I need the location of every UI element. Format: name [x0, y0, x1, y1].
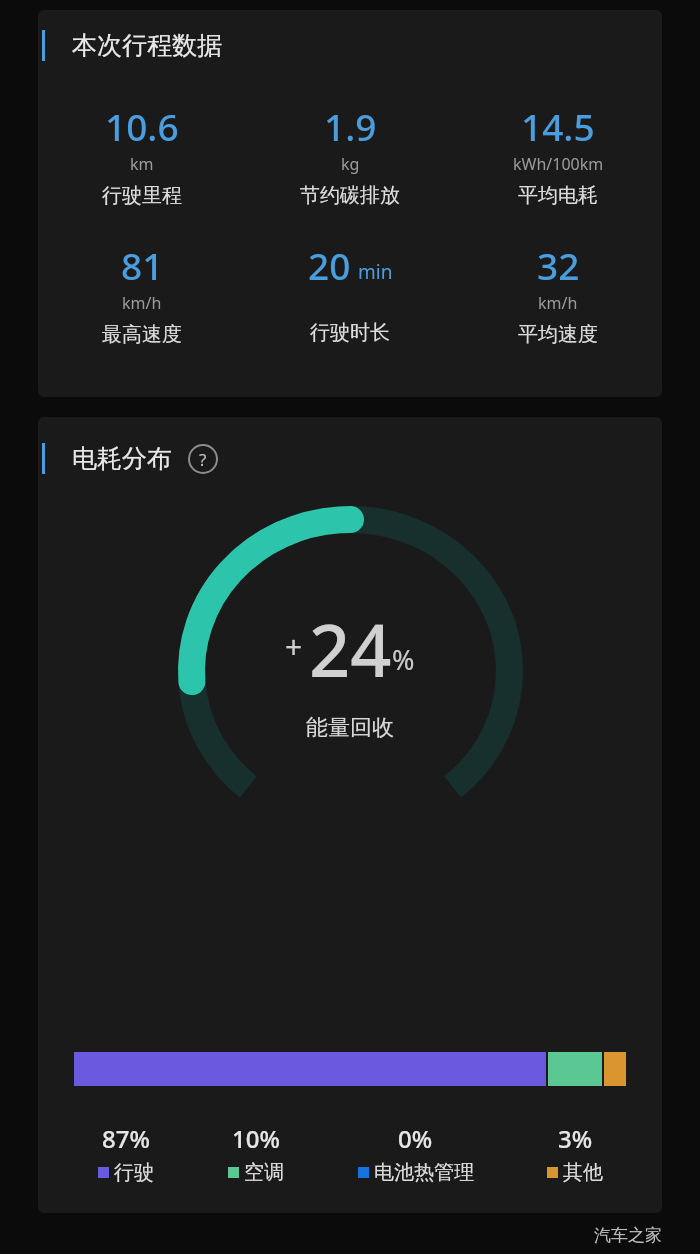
staticText: min — [358, 259, 393, 285]
staticText: kWh/100km — [513, 153, 604, 175]
button[interactable]: 87% — [60, 1122, 191, 1185]
button[interactable]: 10% — [191, 1122, 321, 1185]
staticText: 最高速度 — [102, 322, 182, 347]
button[interactable] — [74, 1052, 626, 1086]
staticText: 0% — [398, 1122, 433, 1155]
button[interactable]: 81 — [38, 240, 246, 347]
staticText: 其他 — [563, 1160, 603, 1185]
staticText: % — [392, 641, 415, 678]
button[interactable]: 32 — [454, 240, 662, 347]
staticText: 电池热管理 — [374, 1160, 474, 1185]
staticText: ? — [199, 448, 207, 471]
staticText: 行驶时长 — [310, 320, 390, 345]
staticText: + — [285, 626, 303, 667]
staticText: 14.5 — [521, 101, 595, 151]
staticText: 3% — [558, 1122, 593, 1155]
staticText: 平均速度 — [518, 322, 598, 347]
staticText: km/h — [122, 292, 162, 314]
staticText: 平均电耗 — [518, 183, 598, 208]
staticText: 电耗分布 — [72, 443, 172, 474]
staticText: 20 — [308, 240, 351, 290]
staticText: 汽车之家 — [594, 1225, 662, 1246]
staticText: 10.6 — [105, 101, 179, 151]
staticText: 10% — [232, 1122, 280, 1155]
staticText: 空调 — [244, 1160, 284, 1185]
staticText: 能量回收 — [306, 714, 394, 742]
button[interactable]: 帮助 — [188, 444, 218, 474]
staticText: 本次行程数据 — [72, 30, 222, 61]
staticText: km/h — [538, 292, 578, 314]
staticText: 81 — [121, 240, 164, 290]
staticText: kg — [341, 153, 360, 175]
staticText: 节约碳排放 — [300, 183, 400, 208]
button[interactable]: 1.9 — [246, 101, 454, 208]
staticText: 行驶 — [114, 1160, 154, 1185]
staticText: km — [130, 153, 154, 175]
button[interactable]: 20 — [246, 240, 454, 345]
staticText: 87% — [102, 1122, 150, 1155]
button[interactable]: 10.6 — [38, 101, 246, 208]
button[interactable]: 14.5 — [454, 101, 662, 208]
button[interactable]: 0% — [321, 1122, 510, 1185]
staticText: 24 — [309, 600, 392, 698]
button[interactable]: 3% — [510, 1122, 640, 1185]
staticText: 1.9 — [324, 101, 377, 151]
staticText: 32 — [537, 240, 580, 290]
staticText: 行驶里程 — [102, 183, 182, 208]
